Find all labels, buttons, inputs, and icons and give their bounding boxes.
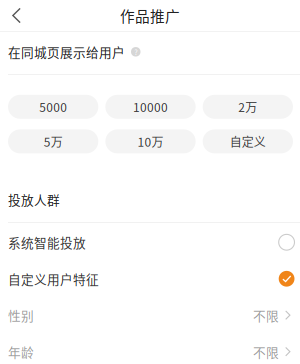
staticText: 5万 (44, 133, 63, 150)
staticText: 2万 (238, 98, 257, 115)
staticText: 不限 (253, 343, 279, 361)
staticText: 自定义用户特征 (8, 270, 99, 288)
staticText: 年龄 (8, 343, 34, 361)
staticText: 不限 (253, 306, 279, 324)
staticText: 在同城页展示给用户 (8, 43, 125, 61)
staticText: ? (134, 46, 137, 57)
staticText: 5000 (39, 98, 67, 115)
staticText: 投放人群 (8, 190, 60, 209)
button[interactable]: 性别 (0, 297, 300, 333)
staticText: 10000 (133, 98, 168, 115)
staticText: 10万 (137, 133, 163, 150)
button[interactable]: 2万 (203, 95, 293, 119)
button[interactable]: 5000 (8, 95, 98, 119)
button[interactable]: 系统智能投放 (0, 224, 300, 260)
button[interactable]: Back (3, 0, 29, 31)
staticText: 性别 (8, 306, 34, 324)
staticText: 自定义 (230, 133, 266, 150)
button[interactable]: 自定义用户特征 (0, 260, 300, 297)
button[interactable]: 年龄 (0, 333, 300, 364)
button[interactable]: 10万 (105, 129, 196, 153)
button[interactable]: 自定义 (203, 129, 293, 153)
button[interactable]: 10000 (105, 95, 196, 119)
button[interactable]: 5万 (8, 129, 98, 153)
staticText: 系统智能投放 (8, 233, 86, 251)
staticText: 作品推广 (120, 5, 180, 26)
